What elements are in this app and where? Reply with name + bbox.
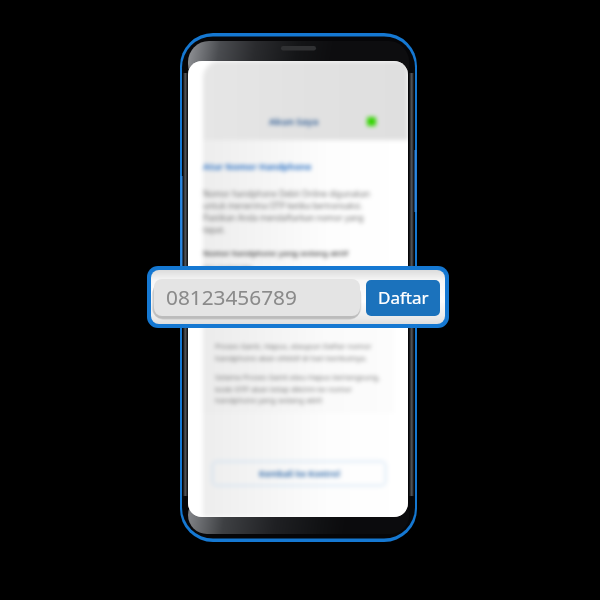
staticText: 08123456789 (166, 283, 297, 311)
staticText: Daftar (378, 286, 429, 309)
staticText: 08123456789 (203, 263, 253, 274)
staticText: Proses Ganti, Hapus, ataupun Daftar nomo… (215, 341, 382, 363)
button[interactable]: 08123456789 (154, 279, 360, 316)
staticText: Akun Saya (269, 115, 319, 128)
button[interactable]: Kembali ke Kontrol (212, 461, 386, 486)
staticText: Nomor handphone yang sedang aktif (203, 248, 349, 259)
staticText: Nomor handphone Debit Online digunakan u… (203, 188, 380, 235)
staticText: Atur Nomor Handphone (203, 160, 312, 172)
staticText: Kembali ke Kontrol (259, 468, 340, 480)
staticText: Selama Proses Ganti atau Hapus berlangsu… (215, 372, 382, 405)
button[interactable]: Daftar (366, 280, 440, 316)
